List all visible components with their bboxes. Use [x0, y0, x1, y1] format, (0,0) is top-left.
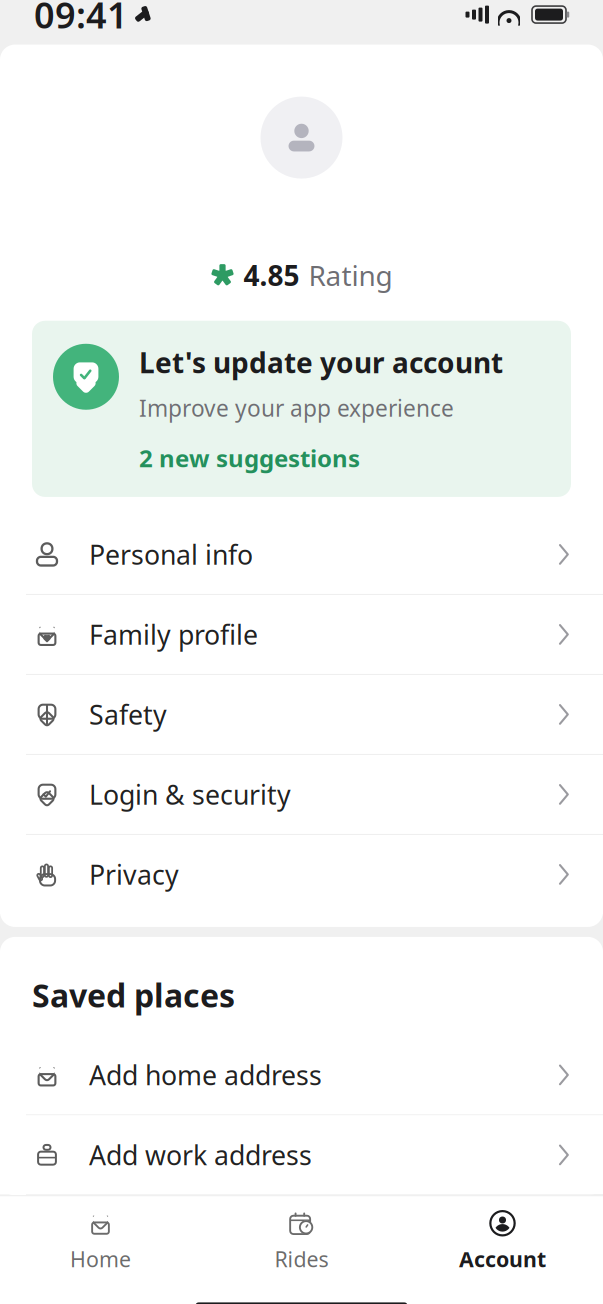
button[interactable]: Home: [0, 1196, 201, 1273]
button[interactable]: Login & security: [0, 755, 603, 834]
staticText: Rating: [308, 257, 392, 294]
button[interactable]: Personal info: [0, 515, 603, 594]
button[interactable]: Safety: [0, 675, 603, 754]
staticText: Privacy: [89, 857, 179, 892]
staticText: Login & security: [89, 777, 291, 812]
staticText: Add work address: [89, 1137, 312, 1173]
button[interactable]: Add work address: [0, 1115, 603, 1194]
staticText: Account: [459, 1245, 546, 1273]
button[interactable]: Let's update your account: [32, 321, 571, 497]
staticText: Safety: [89, 697, 167, 732]
staticText: Home: [70, 1245, 131, 1273]
staticText: Family profile: [89, 617, 258, 652]
staticText: Let's update your account: [139, 344, 503, 381]
button[interactable]: Rides: [201, 1196, 402, 1273]
button[interactable]: Privacy: [0, 835, 603, 914]
staticText: 2 new suggestions: [139, 442, 360, 474]
staticText: Add home address: [89, 1057, 322, 1093]
staticText: 09:41: [34, 0, 128, 38]
staticText: Improve your app experience: [139, 393, 454, 423]
staticText: Personal info: [89, 537, 253, 572]
staticText: 4.85: [243, 257, 299, 294]
button[interactable]: Family profile: [0, 595, 603, 674]
staticText: Rides: [274, 1245, 328, 1273]
button[interactable]: Account: [402, 1196, 603, 1273]
button[interactable]: Add home address: [0, 1035, 603, 1114]
staticText: Saved places: [32, 974, 235, 1016]
